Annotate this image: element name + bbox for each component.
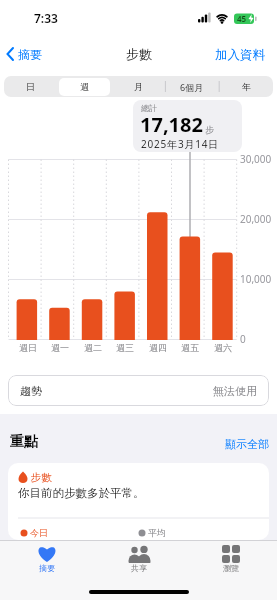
staticText: 步數 [28,470,52,484]
staticText: 6個月 [180,81,204,93]
staticText: 今日 [30,527,48,538]
staticText: 趨勢 [20,384,42,398]
staticText: 週五 [181,342,199,353]
staticText: 45 [237,13,247,24]
button[interactable]: 年 [219,76,273,97]
staticText: 10,000 [240,272,272,286]
staticText: 日 [26,81,35,92]
staticText: 17,182 [140,111,203,138]
staticText: 瀏覽 [223,563,239,573]
staticText: 週日 [19,342,37,353]
staticText: 2025年3月14日 [141,137,220,151]
button[interactable]: 瀏覽 [185,545,277,573]
staticText: 摘要 [39,563,55,573]
staticText: 週一 [51,342,69,353]
staticText: 年 [242,81,251,92]
button[interactable]: 週 [57,76,111,97]
staticText: 20,000 [240,212,272,226]
staticText: 週四 [149,342,167,353]
staticText: 共享 [131,563,147,573]
staticText: 週二 [84,342,102,353]
staticText: 你目前的步數多於平常。 [18,486,145,500]
staticText: 步數 [126,46,152,62]
staticText: 7:33 [34,10,58,26]
button[interactable]: 摘要 [0,545,93,573]
staticText: 週六 [214,342,232,353]
staticText: 週 [80,81,89,92]
button[interactable]: 共享 [93,545,185,573]
staticText: 月 [134,81,143,92]
button[interactable]: 趨勢 [8,375,269,406]
staticText: 總計 [141,103,157,113]
staticText: 摘要 [18,47,42,62]
staticText: 0 [240,332,246,346]
button[interactable]: 6個月 [165,76,219,97]
staticText: 步 [203,123,215,135]
staticText: 平均 [148,527,166,538]
staticText: 重點 [10,433,38,451]
button[interactable]: 月 [111,76,165,97]
staticText: 30,000 [240,152,272,166]
staticText: 無法使用 [213,384,257,398]
button[interactable]: 顯示全部 [225,437,269,451]
button[interactable]: 日 [4,76,57,97]
button[interactable]: 步數 [8,463,269,540]
button[interactable]: 加入資料 [215,47,265,63]
button[interactable]: 摘要 [5,46,42,62]
staticText: 週三 [116,342,134,353]
